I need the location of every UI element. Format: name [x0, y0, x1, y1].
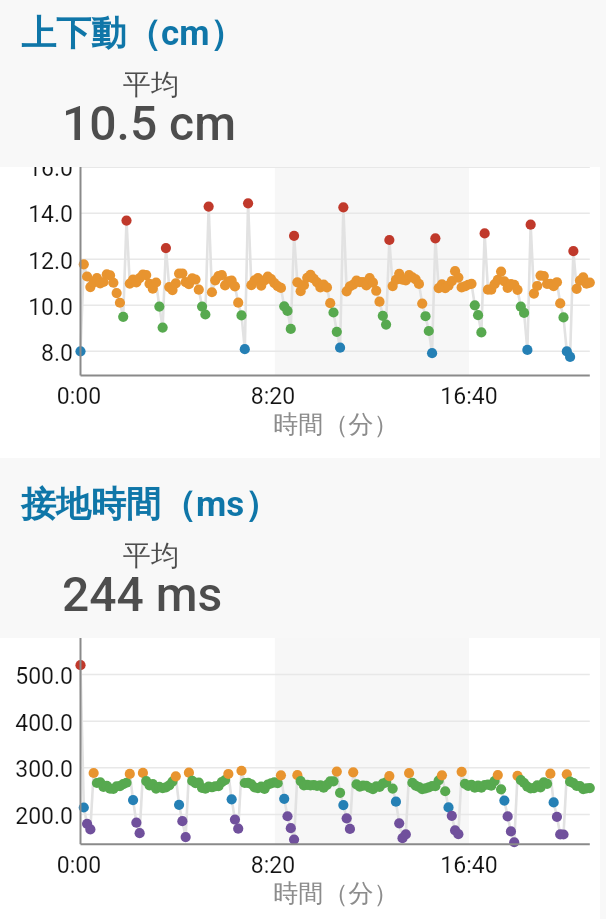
staticText: 平均 [123, 67, 179, 102]
staticText: 0:00 [19, 852, 139, 879]
staticText: 200.0 [0, 803, 73, 830]
staticText: 300.0 [0, 756, 73, 783]
staticText: 8:20 [213, 383, 333, 410]
staticText: 接地時間（ms） [21, 482, 280, 526]
button[interactable]: 接地時間（ms） [0, 458, 606, 638]
staticText: 244 ms [62, 566, 223, 622]
staticText: 16:40 [409, 383, 529, 410]
staticText: 10.5 cm [62, 95, 236, 151]
staticText: 16.0 [0, 167, 73, 182]
staticText: 0:00 [19, 383, 139, 410]
staticText: 平均 [123, 538, 179, 573]
staticText: 14.0 [0, 201, 73, 228]
staticText: 12.0 [0, 248, 73, 275]
staticText: 16:40 [409, 852, 529, 879]
staticText: 8:20 [213, 852, 333, 879]
staticText: 8.0 [0, 340, 73, 367]
staticText: 時間（分） [156, 409, 516, 440]
staticText: 上下動（cm） [21, 11, 245, 55]
staticText: 400.0 [0, 710, 73, 737]
staticText: 500.0 [0, 663, 73, 690]
staticText: 10.0 [0, 294, 73, 321]
staticText: 時間（分） [156, 878, 516, 909]
button[interactable]: 上下動（cm） [0, 0, 606, 167]
